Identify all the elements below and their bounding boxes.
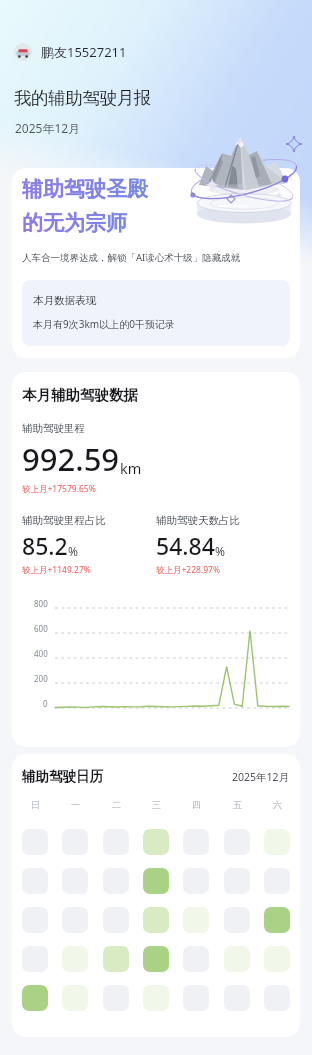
button[interactable] (264, 946, 290, 972)
button[interactable] (183, 829, 209, 855)
staticText: 200 (34, 673, 48, 684)
staticText: 2025年12月 (15, 120, 81, 136)
button[interactable] (143, 868, 169, 894)
button[interactable] (103, 946, 129, 972)
button[interactable] (22, 985, 48, 1011)
button[interactable] (62, 829, 88, 855)
staticText: 较上月+228.97% (156, 564, 221, 576)
staticText: 辅助驾驶圣殿 (22, 176, 148, 202)
staticText: 五 (233, 799, 242, 810)
button[interactable] (264, 829, 290, 855)
staticText: 辅助驾驶日历 (22, 768, 103, 785)
button[interactable] (103, 907, 129, 933)
button[interactable] (143, 829, 169, 855)
button[interactable] (224, 946, 250, 972)
button[interactable] (183, 946, 209, 972)
staticText: 人车合一境界达成，解锁「AI读心术十级」隐藏成就 (22, 251, 241, 264)
staticText: 日 (31, 799, 40, 810)
staticText: km (120, 458, 142, 478)
button[interactable] (183, 868, 209, 894)
button[interactable] (143, 946, 169, 972)
staticText: 的无为宗师 (22, 210, 127, 236)
button[interactable] (103, 829, 129, 855)
staticText: 鹏友15527211 (41, 43, 127, 61)
staticText: 四 (192, 799, 201, 810)
button[interactable] (183, 985, 209, 1011)
button[interactable] (22, 868, 48, 894)
staticText: 辅助驾驶里程 (22, 422, 85, 435)
button[interactable] (103, 985, 129, 1011)
button[interactable]: 鹏友15527211 (14, 43, 127, 61)
staticText: % (215, 543, 225, 559)
staticText: 600 (34, 623, 48, 634)
staticText: 本月辅助驾驶数据 (22, 386, 138, 404)
staticText: 800 (34, 598, 48, 609)
button[interactable] (183, 907, 209, 933)
staticText: 本月数据表现 (33, 294, 96, 307)
button[interactable] (143, 985, 169, 1011)
button[interactable] (22, 946, 48, 972)
button[interactable] (143, 907, 169, 933)
staticText: 较上月+17579.65% (22, 483, 96, 495)
button[interactable] (22, 907, 48, 933)
staticText: 三 (152, 799, 161, 810)
button[interactable] (264, 868, 290, 894)
staticText: 辅助驾驶天数占比 (156, 514, 240, 527)
button[interactable] (62, 907, 88, 933)
button[interactable] (224, 868, 250, 894)
button[interactable] (62, 946, 88, 972)
staticText: 二 (112, 799, 121, 810)
button[interactable] (264, 907, 290, 933)
button[interactable] (103, 868, 129, 894)
button[interactable] (224, 829, 250, 855)
staticText: 辅助驾驶里程占比 (22, 514, 106, 527)
staticText: 2025年12月 (232, 770, 290, 784)
staticText: % (68, 543, 78, 559)
staticText: 400 (34, 648, 48, 659)
staticText: 较上月+1149.27% (22, 564, 91, 576)
staticText: 992.59 (22, 438, 120, 480)
staticText: 0 (43, 698, 48, 709)
staticText: 54.84 (156, 530, 215, 561)
button[interactable] (224, 907, 250, 933)
staticText: 本月有9次3km以上的0干预记录 (33, 317, 175, 331)
button[interactable] (62, 985, 88, 1011)
staticText: 一 (71, 799, 80, 810)
staticText: 六 (273, 799, 282, 810)
button[interactable] (224, 985, 250, 1011)
staticText: 85.2 (22, 530, 68, 561)
button[interactable] (62, 868, 88, 894)
button[interactable] (264, 985, 290, 1011)
button[interactable] (22, 829, 48, 855)
staticText: 我的辅助驾驶月报 (14, 87, 151, 109)
